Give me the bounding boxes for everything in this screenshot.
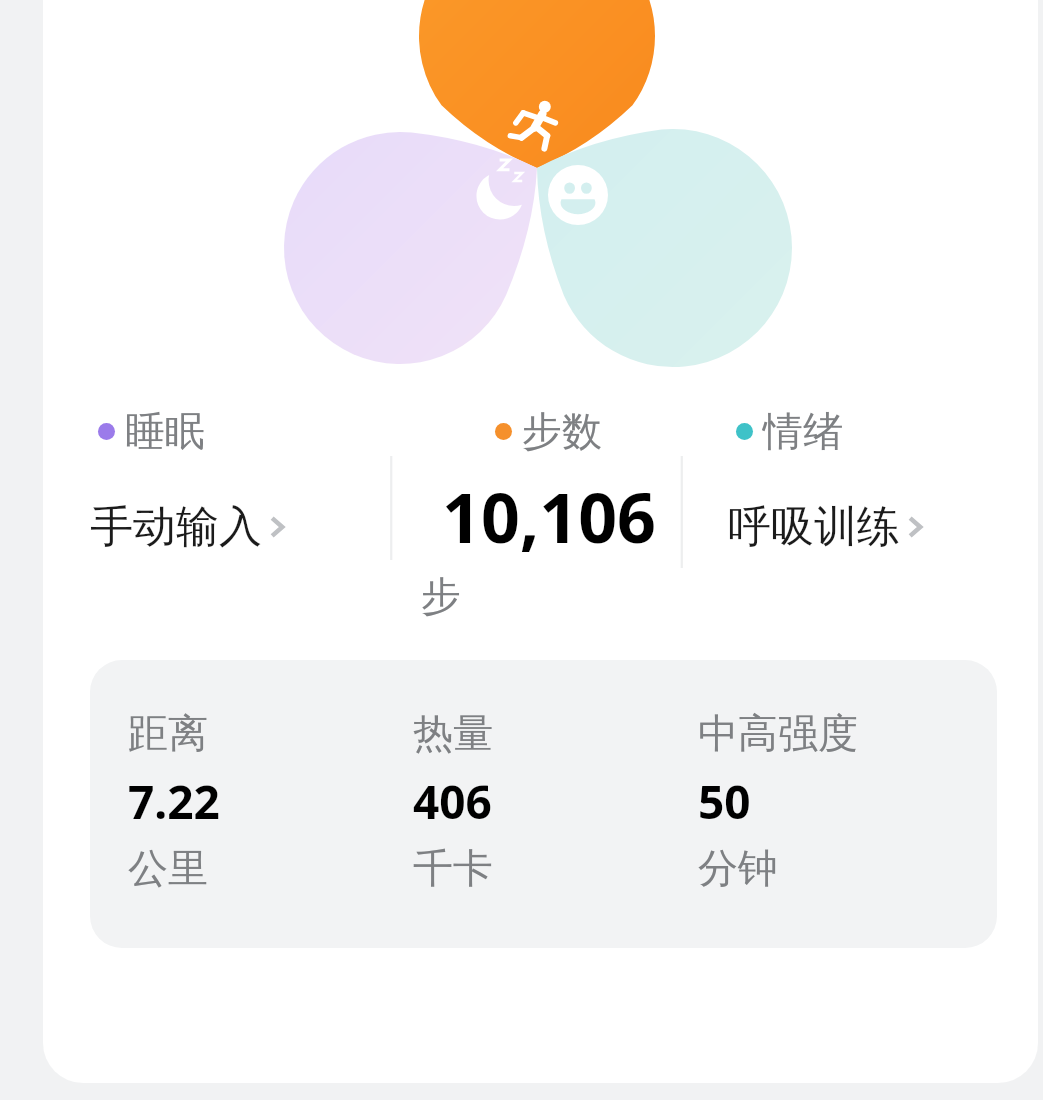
staticText: 千卡 [413, 843, 493, 893]
staticText: 7.22 [128, 770, 220, 833]
staticText: 406 [413, 770, 492, 833]
staticText: 中高强度 [698, 708, 858, 758]
staticText: 10,106 [442, 470, 656, 563]
staticText: 睡眠 [125, 406, 205, 456]
staticText: 公里 [128, 843, 208, 893]
button[interactable]: 步数 [397, 378, 700, 660]
staticText: 距离 [128, 708, 208, 758]
staticText: 热量 [413, 708, 493, 758]
button[interactable]: 睡眠 [43, 378, 397, 660]
staticText: 分钟 [698, 843, 778, 893]
staticText: 步数 [522, 406, 602, 456]
staticText: 情绪 [763, 406, 843, 456]
staticText: 步 [421, 571, 461, 621]
staticText: 手动输入 [90, 500, 262, 554]
staticText: 50 [698, 770, 751, 833]
staticText: 呼吸训练 [728, 500, 900, 554]
button[interactable]: 情绪 [700, 378, 1038, 660]
button[interactable]: 距离 [90, 660, 997, 948]
